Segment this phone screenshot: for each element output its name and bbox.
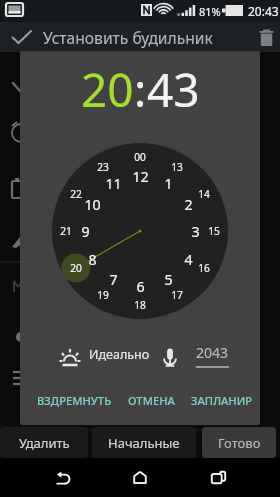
staticText: 7 (109, 270, 118, 289)
staticText: Готово (218, 434, 261, 452)
button[interactable]: Удалить (0, 427, 88, 458)
button[interactable]: Recents (198, 458, 238, 497)
button[interactable]: Confirm (6, 22, 38, 52)
staticText: ЗАПЛАНИР (191, 393, 253, 408)
button[interactable]: Sunrise (56, 345, 84, 373)
staticText: 4 (184, 250, 193, 269)
staticText: 21 (60, 224, 72, 238)
staticText: ВЗДРЕМНУТЬ (37, 393, 112, 408)
button[interactable]: Идеально (89, 346, 150, 363)
button[interactable]: 43 (147, 58, 200, 121)
staticText: 16 (198, 261, 210, 275)
staticText: 6 (136, 277, 145, 296)
staticText: : (134, 58, 147, 121)
button[interactable]: 20 (81, 58, 134, 121)
staticText: 14 (198, 187, 210, 201)
button[interactable]: ВЗДРЕМНУТЬ (35, 388, 114, 413)
staticText: Установить будильник (43, 27, 213, 48)
staticText: 9 (81, 222, 90, 241)
staticText: 13 (171, 160, 183, 174)
staticText: 10 (84, 195, 101, 214)
button[interactable]: Home (120, 458, 160, 497)
button[interactable]: Delete (252, 22, 280, 52)
staticText: 12 (132, 167, 149, 186)
button[interactable]: Начальные (92, 427, 196, 458)
staticText: 00 (134, 150, 146, 164)
staticText: 1 (164, 174, 173, 193)
staticText: 19 (97, 288, 109, 302)
staticText: 20:43 (248, 3, 279, 19)
button[interactable]: Voice input (157, 345, 183, 371)
staticText: 11 (105, 174, 122, 193)
staticText: 81% (199, 4, 221, 19)
staticText: 2043 (196, 343, 229, 362)
staticText: 3 (191, 222, 200, 241)
staticText: 23 (97, 160, 109, 174)
staticText: 22 (70, 187, 82, 201)
button[interactable]: Готово (202, 427, 276, 458)
staticText: Начальные (108, 434, 180, 452)
button[interactable]: ЗАПЛАНИР (189, 388, 255, 413)
button[interactable]: Back (43, 458, 83, 497)
button[interactable]: ОТМЕНА (126, 388, 177, 413)
staticText: ОТМЕНА (128, 393, 175, 408)
staticText: 20 (70, 261, 82, 275)
staticText: 2 (184, 195, 193, 214)
staticText: Удалить (19, 434, 70, 452)
staticText: 5 (164, 270, 173, 289)
staticText: 17 (171, 288, 183, 302)
staticText: 8 (88, 250, 97, 269)
staticText: 15 (208, 224, 220, 238)
staticText: 18 (134, 298, 146, 312)
